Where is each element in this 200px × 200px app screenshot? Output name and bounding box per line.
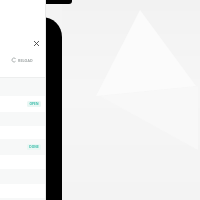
staticText: DONE: [29, 145, 39, 149]
staticText: RELOAD: [18, 58, 33, 63]
button[interactable]: DONE: [0, 139, 45, 155]
button[interactable]: OPEN: [0, 96, 45, 112]
button[interactable]: RELOAD: [0, 55, 45, 65]
staticText: OPEN: [29, 102, 39, 106]
button[interactable]: Close: [31, 38, 41, 48]
